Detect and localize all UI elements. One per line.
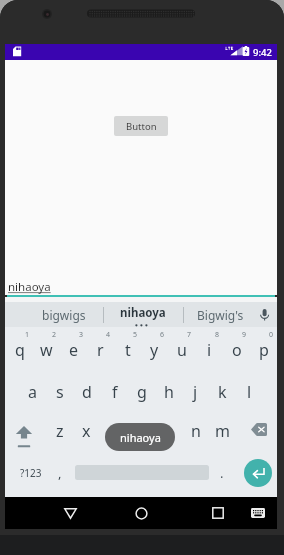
staticText: d — [82, 381, 92, 403]
staticText: 0 — [269, 330, 274, 340]
staticText: m — [215, 420, 230, 442]
button[interactable]: 1 — [6, 327, 33, 368]
button[interactable]: 5 — [114, 327, 141, 368]
button[interactable]: f — [101, 368, 128, 409]
staticText: o — [232, 339, 242, 361]
button[interactable]: Switch keyboard — [243, 497, 273, 529]
staticText: 9 — [242, 330, 247, 340]
button[interactable]: 8 — [196, 327, 223, 368]
staticText: 6 — [160, 330, 165, 340]
staticText: x — [82, 420, 91, 442]
staticText: nihaoya — [120, 430, 161, 445]
button[interactable]: z — [46, 409, 73, 450]
button[interactable]: Back — [50, 497, 90, 529]
staticText: Button — [126, 120, 157, 133]
button[interactable]: nihaoya — [104, 302, 183, 327]
button[interactable]: k — [209, 368, 236, 409]
staticText: z — [56, 420, 64, 442]
staticText: s — [56, 381, 64, 403]
staticText: 1 — [25, 330, 30, 340]
staticText: 2 — [52, 330, 57, 340]
button[interactable]: Bigwig's — [184, 302, 256, 327]
staticText: nihaoya — [120, 305, 166, 321]
staticText: q — [15, 339, 25, 361]
staticText: 3 — [79, 330, 84, 340]
staticText: w — [40, 339, 53, 361]
staticText: 4 — [106, 330, 111, 340]
button[interactable]: m — [209, 409, 236, 450]
staticText: , — [58, 464, 62, 482]
staticText: nihaoya — [8, 279, 51, 295]
button[interactable]: bigwigs — [5, 302, 103, 327]
staticText: g — [137, 381, 147, 403]
button[interactable]: b — [155, 409, 182, 450]
staticText: ?123 — [20, 466, 42, 480]
staticText: . — [220, 464, 224, 482]
staticText: h — [164, 381, 174, 403]
button[interactable]: 2 — [33, 327, 60, 368]
staticText: t — [125, 339, 131, 361]
button[interactable]: ?123 — [13, 455, 49, 491]
staticText: f — [112, 381, 118, 403]
button[interactable]: Backspace — [243, 409, 275, 450]
staticText: 7 — [187, 330, 192, 340]
button[interactable]: 7 — [168, 327, 195, 368]
staticText: p — [259, 339, 269, 361]
button[interactable]: c — [101, 409, 128, 450]
staticText: k — [218, 381, 227, 403]
staticText: 9:42 — [253, 46, 272, 59]
staticText: b — [164, 420, 174, 442]
staticText: y — [150, 339, 159, 361]
staticText: bigwigs — [42, 307, 86, 323]
button[interactable]: j — [182, 368, 209, 409]
staticText: c — [111, 420, 119, 442]
staticText: Bigwig's — [197, 307, 244, 323]
button[interactable]: . — [210, 455, 234, 491]
button[interactable]: , — [48, 455, 72, 491]
button[interactable]: d — [73, 368, 100, 409]
button[interactable]: x — [73, 409, 100, 450]
button[interactable]: n — [182, 409, 209, 450]
button[interactable]: 0 — [250, 327, 277, 368]
button[interactable]: 4 — [87, 327, 114, 368]
button[interactable]: Button — [114, 116, 168, 136]
button[interactable]: Recent apps — [198, 497, 238, 529]
staticText: v — [137, 420, 146, 442]
staticText: j — [193, 381, 198, 403]
staticText: u — [177, 339, 187, 361]
staticText: l — [247, 381, 252, 403]
button[interactable]: a — [19, 368, 46, 409]
button[interactable]: 6 — [141, 327, 168, 368]
button[interactable]: g — [128, 368, 155, 409]
button[interactable]: Enter — [244, 459, 272, 487]
button[interactable]: s — [46, 368, 73, 409]
button[interactable]: h — [155, 368, 182, 409]
staticText: i — [207, 339, 212, 361]
button[interactable]: Voice input — [254, 302, 275, 327]
staticText: r — [97, 339, 104, 361]
staticText: 5 — [133, 330, 138, 340]
button[interactable]: 3 — [60, 327, 87, 368]
button[interactable]: Shift — [11, 409, 47, 450]
button[interactable]: 9 — [223, 327, 250, 368]
staticText: a — [28, 381, 37, 403]
button[interactable]: Home — [121, 497, 161, 529]
button[interactable]: l — [236, 368, 263, 409]
staticText: n — [191, 420, 201, 442]
button[interactable]: v — [128, 409, 155, 450]
staticText: e — [69, 339, 79, 361]
staticText: 8 — [215, 330, 220, 340]
